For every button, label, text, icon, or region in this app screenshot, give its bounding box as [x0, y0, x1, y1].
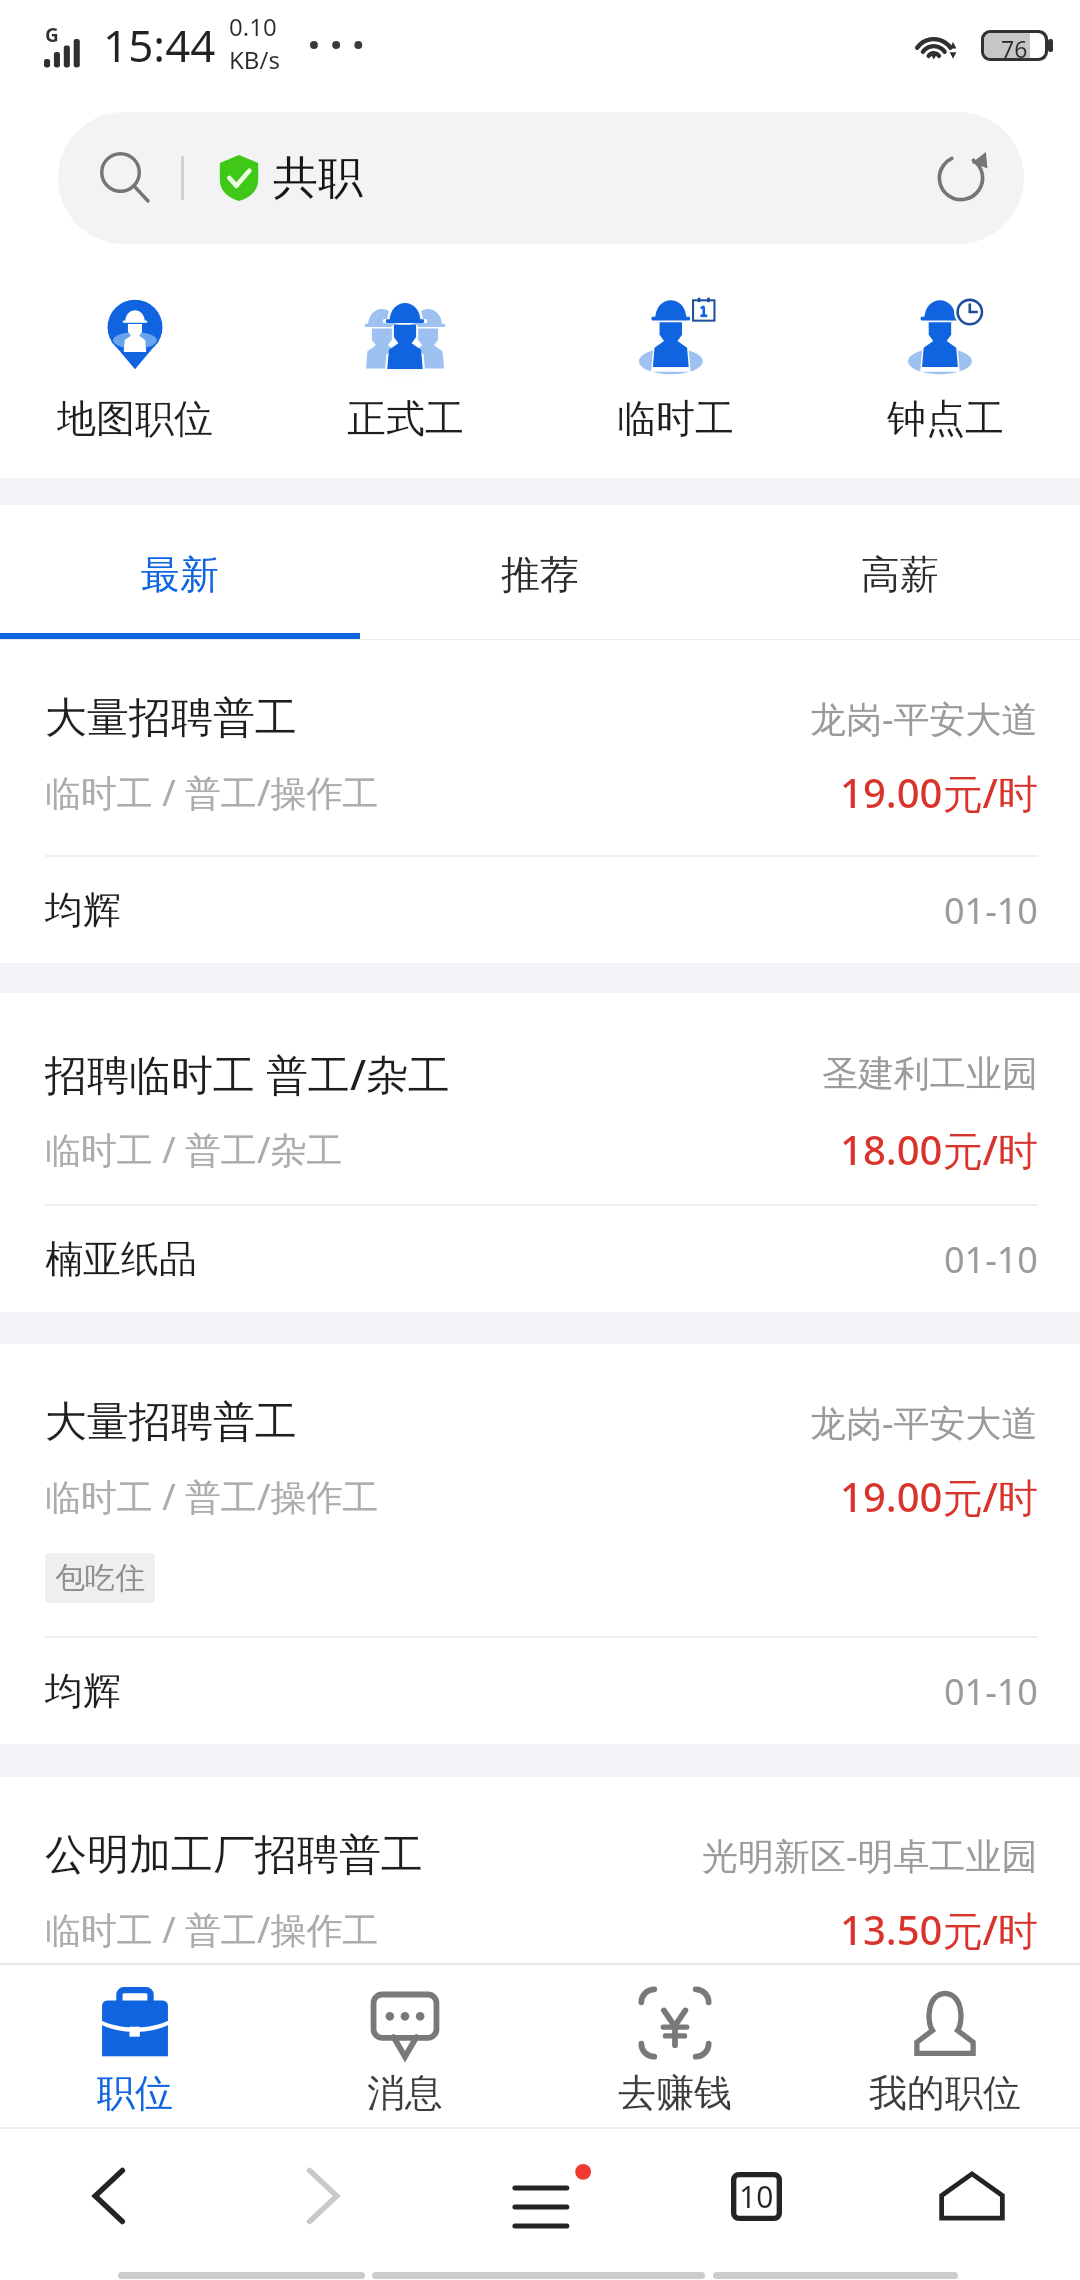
staticText: KB/s: [229, 43, 280, 76]
staticText: 均辉: [45, 886, 121, 934]
staticText: 最新: [141, 550, 219, 599]
button[interactable]: 招聘临时工 普工/杂工: [0, 993, 1080, 1312]
button[interactable]: 钟点工: [810, 265, 1080, 478]
staticText: 推荐: [501, 550, 579, 599]
button[interactable]: 正式工: [270, 265, 540, 478]
staticText: 地图职位: [57, 394, 213, 443]
staticText: 13.50元/时: [840, 1902, 1038, 1957]
staticText: 临时工 / 普工/操作工: [45, 1905, 379, 1954]
staticText: 龙岗-平安大道: [810, 1398, 1038, 1447]
button[interactable]: 临时工: [540, 265, 810, 478]
button[interactable]: 最新: [0, 510, 360, 638]
staticText: 职位: [97, 2069, 173, 2117]
staticText: 龙岗-平安大道: [810, 694, 1038, 743]
button[interactable]: 去赚钱: [540, 1965, 810, 2127]
staticText: 正式工: [347, 394, 464, 443]
staticText: 19.00元/时: [840, 765, 1038, 820]
staticText: 0.10: [229, 10, 277, 43]
staticText: 临时工 / 普工/操作工: [45, 1472, 379, 1521]
button[interactable]: 消息: [270, 1965, 540, 2127]
staticText: 01-10: [944, 1667, 1038, 1716]
button[interactable]: Refresh: [934, 151, 988, 205]
staticText: 76: [1001, 33, 1028, 58]
other: WiFi: [913, 27, 965, 63]
staticText: 15:44: [103, 15, 216, 75]
staticText: 公明加工厂招聘普工: [45, 1829, 423, 1882]
staticText: 圣建利工业园: [822, 1051, 1038, 1096]
button[interactable]: 高薪: [720, 510, 1080, 638]
staticText: 包吃住: [55, 1559, 145, 1597]
staticText: 高薪: [861, 550, 939, 599]
button[interactable]: Tabs: [648, 2129, 864, 2263]
staticText: 去赚钱: [618, 2069, 732, 2117]
staticText: 01-10: [944, 886, 1038, 935]
button[interactable]: 大量招聘普工: [0, 640, 1080, 963]
staticText: 临时工: [617, 394, 734, 443]
staticText: 10: [739, 2176, 774, 2217]
staticText: 招聘临时工 普工/杂工: [45, 1045, 451, 1102]
staticText: 共职: [273, 150, 363, 207]
staticText: 大量招聘普工: [45, 1396, 297, 1449]
staticText: 消息: [367, 2069, 443, 2117]
staticText: 18.00元/时: [840, 1122, 1038, 1177]
staticText: 楠亚纸品: [45, 1235, 197, 1283]
button[interactable]: 共职: [58, 112, 1024, 244]
staticText: 大量招聘普工: [45, 692, 297, 745]
staticText: 钟点工: [887, 394, 1004, 443]
button[interactable]: 职位: [0, 1965, 270, 2127]
button[interactable]: 大量招聘普工: [0, 1344, 1080, 1744]
staticText: 临时工 / 普工/操作工: [45, 768, 379, 817]
staticText: 光明新区-明卓工业园: [702, 1831, 1038, 1880]
button[interactable]: Back: [0, 2129, 216, 2263]
button[interactable]: Forward: [216, 2129, 432, 2263]
button[interactable]: Home: [864, 2129, 1080, 2263]
staticText: 临时工 / 普工/杂工: [45, 1125, 343, 1174]
staticText: 均辉: [45, 1667, 121, 1715]
button[interactable]: Menu: [432, 2129, 648, 2263]
staticText: 我的职位: [869, 2069, 1021, 2117]
button[interactable]: 推荐: [360, 510, 720, 638]
staticText: 19.00元/时: [840, 1469, 1038, 1524]
staticText: 01-10: [944, 1235, 1038, 1284]
button[interactable]: 地图职位: [0, 265, 270, 478]
button[interactable]: 我的职位: [810, 1965, 1080, 2127]
button[interactable]: 公明加工厂招聘普工: [0, 1777, 1080, 1963]
staticText: G: [45, 22, 59, 48]
